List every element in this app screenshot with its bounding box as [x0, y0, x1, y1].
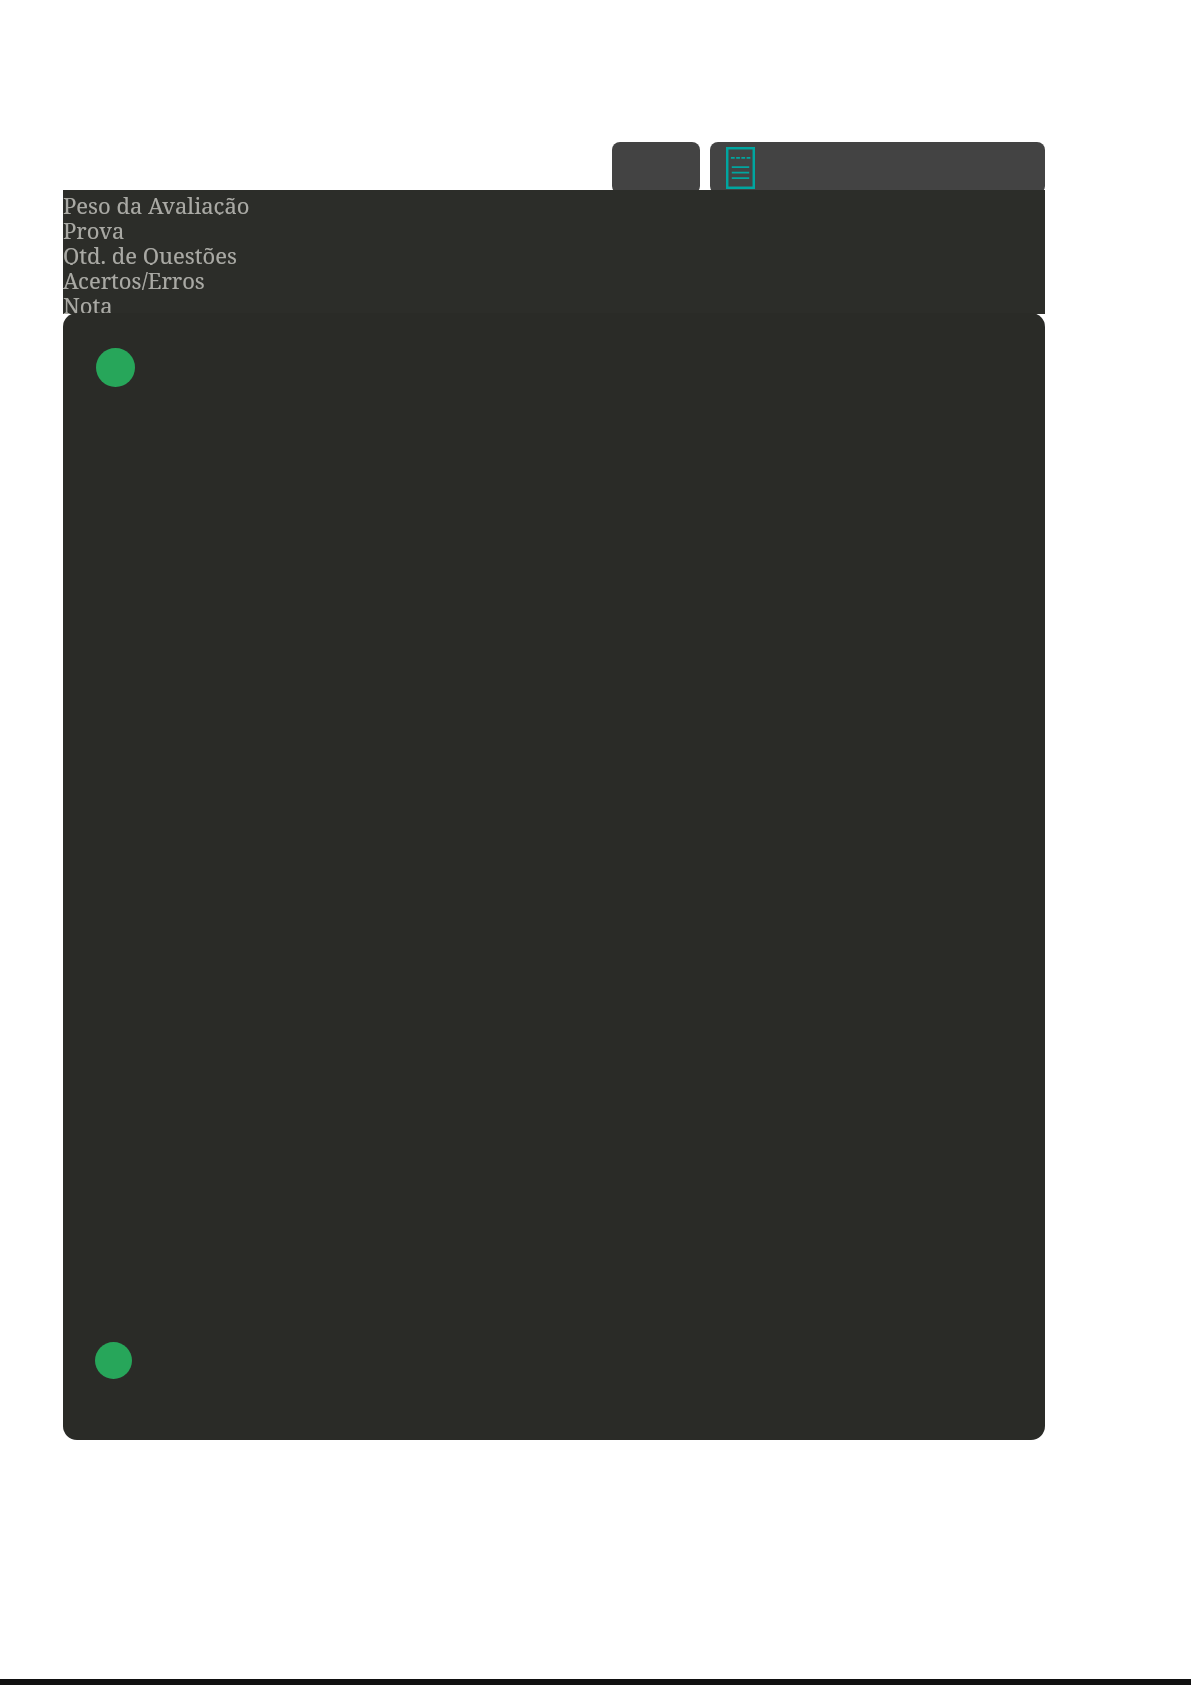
- button[interactable]: Voltar: [612, 142, 700, 194]
- staticText: Nota: [63, 290, 113, 314]
- button[interactable]: Qtd. de Questões: [63, 240, 1045, 265]
- staticText: Peso da Avaliação: [63, 190, 250, 215]
- button[interactable]: Status ativo: [95, 1342, 132, 1379]
- button[interactable]: Status ativo: [96, 348, 135, 387]
- staticText: Acertos/Erros: [63, 265, 205, 290]
- staticText: Prova: [63, 215, 125, 240]
- button[interactable]: Gabarito: [726, 147, 755, 189]
- button[interactable]: Nota: [63, 290, 1045, 314]
- button[interactable]: Acertos/Erros: [63, 265, 1045, 290]
- button[interactable]: Gabarito: [710, 142, 1045, 194]
- button[interactable]: Status ativo: [63, 313, 1045, 1440]
- staticText: Qtd. de Questões: [63, 240, 237, 265]
- button[interactable]: Peso da Avaliação: [63, 190, 1045, 215]
- button[interactable]: Prova: [63, 215, 1045, 240]
